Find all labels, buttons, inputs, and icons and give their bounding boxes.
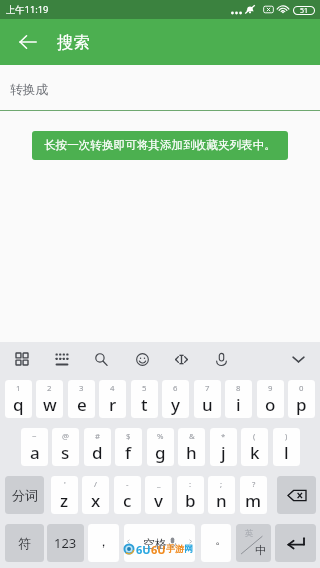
button[interactable]: - bbox=[114, 476, 141, 514]
staticText: * bbox=[221, 431, 226, 442]
staticText: q bbox=[13, 393, 24, 416]
button[interactable]: Hide keyboard bbox=[284, 345, 312, 373]
staticText: 英 bbox=[245, 528, 254, 539]
staticText: 符 bbox=[18, 535, 31, 551]
staticText: x bbox=[91, 489, 101, 512]
button[interactable]: ) bbox=[273, 428, 300, 466]
button[interactable]: Keyboard bbox=[48, 345, 76, 373]
button[interactable]: ( bbox=[241, 428, 268, 466]
staticText: 5 bbox=[142, 383, 147, 394]
staticText: 8 bbox=[236, 383, 241, 394]
button[interactable]: 8 bbox=[225, 380, 252, 418]
staticText: & bbox=[189, 431, 195, 442]
staticText: j bbox=[221, 441, 226, 464]
staticText: f bbox=[125, 441, 132, 464]
button[interactable]: Space bbox=[124, 524, 195, 562]
staticText: / bbox=[94, 479, 97, 490]
button[interactable]: Switch language bbox=[236, 524, 271, 562]
staticText: w bbox=[43, 393, 57, 416]
button[interactable]: % bbox=[147, 428, 174, 466]
staticText: 9 bbox=[268, 383, 273, 394]
button[interactable]: 长按一次转换即可将其添加到收藏夹列表中。 bbox=[32, 131, 288, 160]
button[interactable]: / bbox=[82, 476, 109, 514]
staticText: @ bbox=[62, 431, 70, 442]
button[interactable]: Search bbox=[87, 345, 115, 373]
staticText: r bbox=[109, 393, 117, 416]
button[interactable]: 1 bbox=[5, 380, 32, 418]
button[interactable]: ? bbox=[240, 476, 267, 514]
staticText: ( bbox=[253, 431, 256, 442]
staticText: m bbox=[245, 489, 262, 512]
staticText: 转换成 bbox=[10, 82, 49, 98]
staticText: 4 bbox=[110, 383, 115, 394]
staticText: 空格 bbox=[143, 536, 167, 551]
button[interactable]: 0 bbox=[288, 380, 315, 418]
staticText: y bbox=[171, 393, 180, 416]
button[interactable]: # bbox=[84, 428, 111, 466]
button[interactable]: 6 bbox=[162, 380, 189, 418]
staticText: l bbox=[284, 441, 289, 464]
staticText: b bbox=[185, 489, 196, 512]
button[interactable]: Back bbox=[10, 24, 46, 60]
button[interactable]: ~ bbox=[21, 428, 48, 466]
staticText: g bbox=[155, 441, 166, 464]
staticText: i bbox=[236, 393, 241, 416]
button[interactable]: 。 bbox=[201, 524, 231, 562]
button[interactable]: 2 bbox=[36, 380, 63, 418]
staticText: p bbox=[296, 393, 307, 416]
button[interactable]: & bbox=[178, 428, 205, 466]
staticText: 6 bbox=[173, 383, 178, 394]
staticText: d bbox=[92, 441, 103, 464]
staticText: u bbox=[202, 393, 213, 416]
staticText: 6U bbox=[151, 542, 166, 555]
staticText: z bbox=[60, 489, 69, 512]
button[interactable]: ' bbox=[51, 476, 78, 514]
staticText: v bbox=[154, 489, 163, 512]
staticText: $ bbox=[126, 431, 131, 442]
staticText: 6U bbox=[136, 542, 151, 555]
button[interactable]: @ bbox=[52, 428, 79, 466]
button[interactable]: Backspace bbox=[277, 476, 316, 514]
button[interactable]: $ bbox=[115, 428, 142, 466]
staticText: 。 bbox=[215, 531, 228, 547]
staticText: e bbox=[77, 393, 87, 416]
staticText: 中 bbox=[255, 543, 266, 557]
staticText: ， bbox=[97, 533, 110, 549]
staticText: 1 bbox=[16, 383, 21, 394]
staticText: ' bbox=[64, 479, 66, 490]
button[interactable]: 5 bbox=[131, 380, 158, 418]
button[interactable]: : bbox=[177, 476, 204, 514]
button[interactable]: 4 bbox=[99, 380, 126, 418]
staticText: s bbox=[61, 441, 70, 464]
button[interactable]: 符 bbox=[5, 524, 44, 562]
button[interactable]: Emoji bbox=[128, 345, 156, 373]
staticText: 上午11:19 bbox=[6, 3, 49, 16]
button[interactable]: _ bbox=[145, 476, 172, 514]
staticText: ) bbox=[285, 431, 288, 442]
staticText: ~ bbox=[32, 431, 37, 442]
staticText: o bbox=[265, 393, 276, 416]
button[interactable]: 123 bbox=[47, 524, 84, 562]
staticText: h bbox=[186, 441, 197, 464]
staticText: 0 bbox=[299, 383, 304, 394]
staticText: a bbox=[30, 441, 40, 464]
button[interactable]: Text editing bbox=[167, 345, 195, 373]
button[interactable]: ， bbox=[88, 524, 119, 562]
button[interactable]: Voice input bbox=[207, 345, 235, 373]
button[interactable]: ; bbox=[208, 476, 235, 514]
staticText: - bbox=[126, 479, 129, 490]
staticText: k bbox=[250, 441, 260, 464]
staticText: n bbox=[216, 489, 227, 512]
button[interactable]: 9 bbox=[257, 380, 284, 418]
button[interactable]: Keyboard layouts bbox=[8, 345, 36, 373]
staticText: 7 bbox=[205, 383, 210, 394]
staticText: 51 bbox=[300, 6, 309, 16]
button[interactable]: 分词 bbox=[5, 476, 44, 514]
button[interactable]: * bbox=[210, 428, 237, 466]
button[interactable]: 7 bbox=[194, 380, 221, 418]
staticText: % bbox=[157, 431, 164, 442]
staticText: 搜索 bbox=[57, 32, 90, 53]
button[interactable]: Enter bbox=[275, 524, 316, 562]
staticText: t bbox=[141, 393, 148, 416]
button[interactable]: 3 bbox=[68, 380, 95, 418]
